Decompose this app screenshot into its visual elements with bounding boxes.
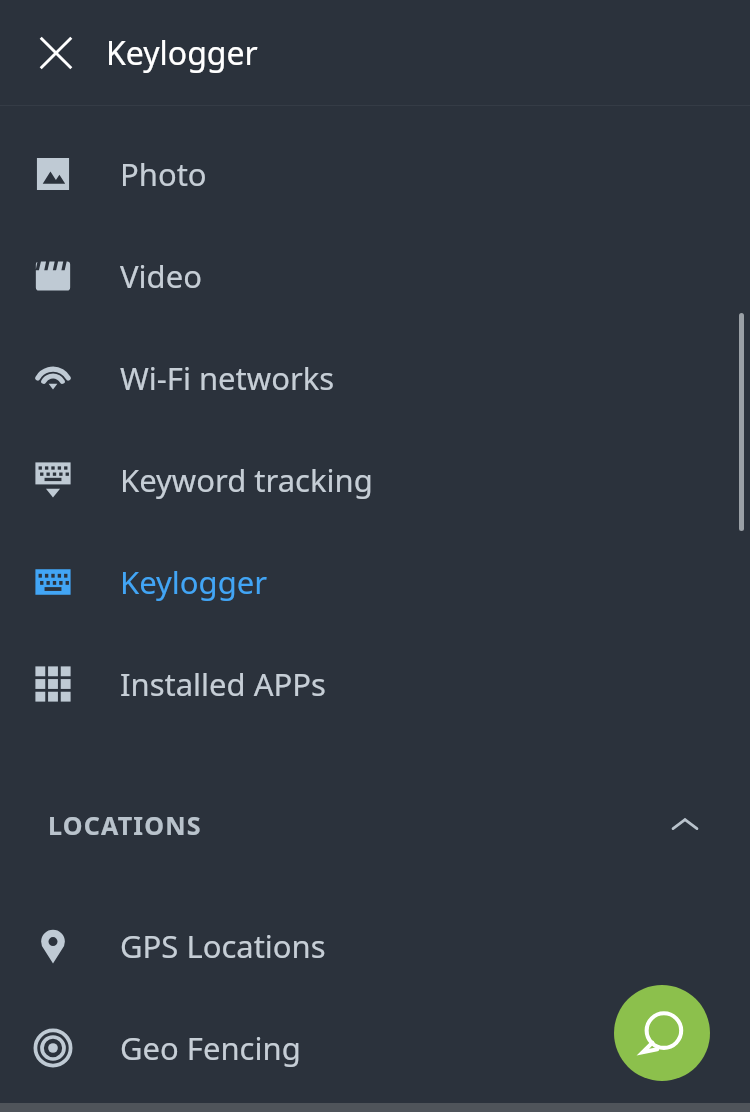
staticText: Keylogger [106,31,258,75]
button[interactable]: Installed APPs [0,633,750,735]
staticText: Installed APPs [120,663,326,705]
staticText: LOCATIONS [48,808,202,842]
staticText: Keyword tracking [120,459,373,501]
staticText: Geo Fencing [120,1027,301,1069]
button[interactable]: Close [22,19,90,87]
staticText: Photo [120,153,207,195]
staticText: Keylogger [120,561,268,603]
staticText: Wi-Fi networks [120,357,335,399]
button[interactable]: Keyword tracking [0,429,750,531]
button[interactable]: Wi-Fi networks [0,327,750,429]
button[interactable]: Keylogger [0,531,750,633]
button[interactable]: LOCATIONS [0,783,750,867]
button[interactable]: Photo [0,123,750,225]
staticText: Video [120,255,202,297]
button[interactable]: Chat [614,985,710,1081]
button[interactable]: Video [0,225,750,327]
button[interactable]: GPS Locations [0,895,750,997]
button[interactable]: Geo Fencing [0,997,750,1099]
staticText: GPS Locations [120,925,326,967]
